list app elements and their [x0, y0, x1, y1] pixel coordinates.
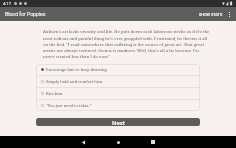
staticText: 4:17 [3, 1, 12, 6]
staticText: Next [112, 119, 125, 126]
button[interactable]: Simply hold and comfort him. [36, 76, 200, 87]
button[interactable]: Encourage him to keep drawing. [36, 64, 200, 75]
button[interactable]: Back [72, 136, 94, 148]
staticText: Simply hold and comfort him. [46, 79, 103, 84]
staticText: Encourage him to keep drawing. [46, 67, 108, 72]
staticText: Kiss him. [46, 91, 64, 96]
staticText: "You just need to relax." [46, 103, 92, 108]
button[interactable]: Recents [142, 136, 164, 148]
button[interactable]: Next [36, 118, 200, 126]
button[interactable]: More options [227, 9, 232, 20]
button[interactable]: Kiss him. [36, 88, 200, 99]
button[interactable]: "You just need to relax." [36, 100, 200, 111]
button[interactable]: SHOW STATS [197, 9, 225, 19]
staticText: Auburn's art lacks vivacity and life. He… [43, 29, 210, 59]
button[interactable]: Home [107, 136, 129, 148]
staticText: SHOW STATS [199, 12, 223, 16]
staticText: Blood for Poppies [5, 11, 46, 17]
